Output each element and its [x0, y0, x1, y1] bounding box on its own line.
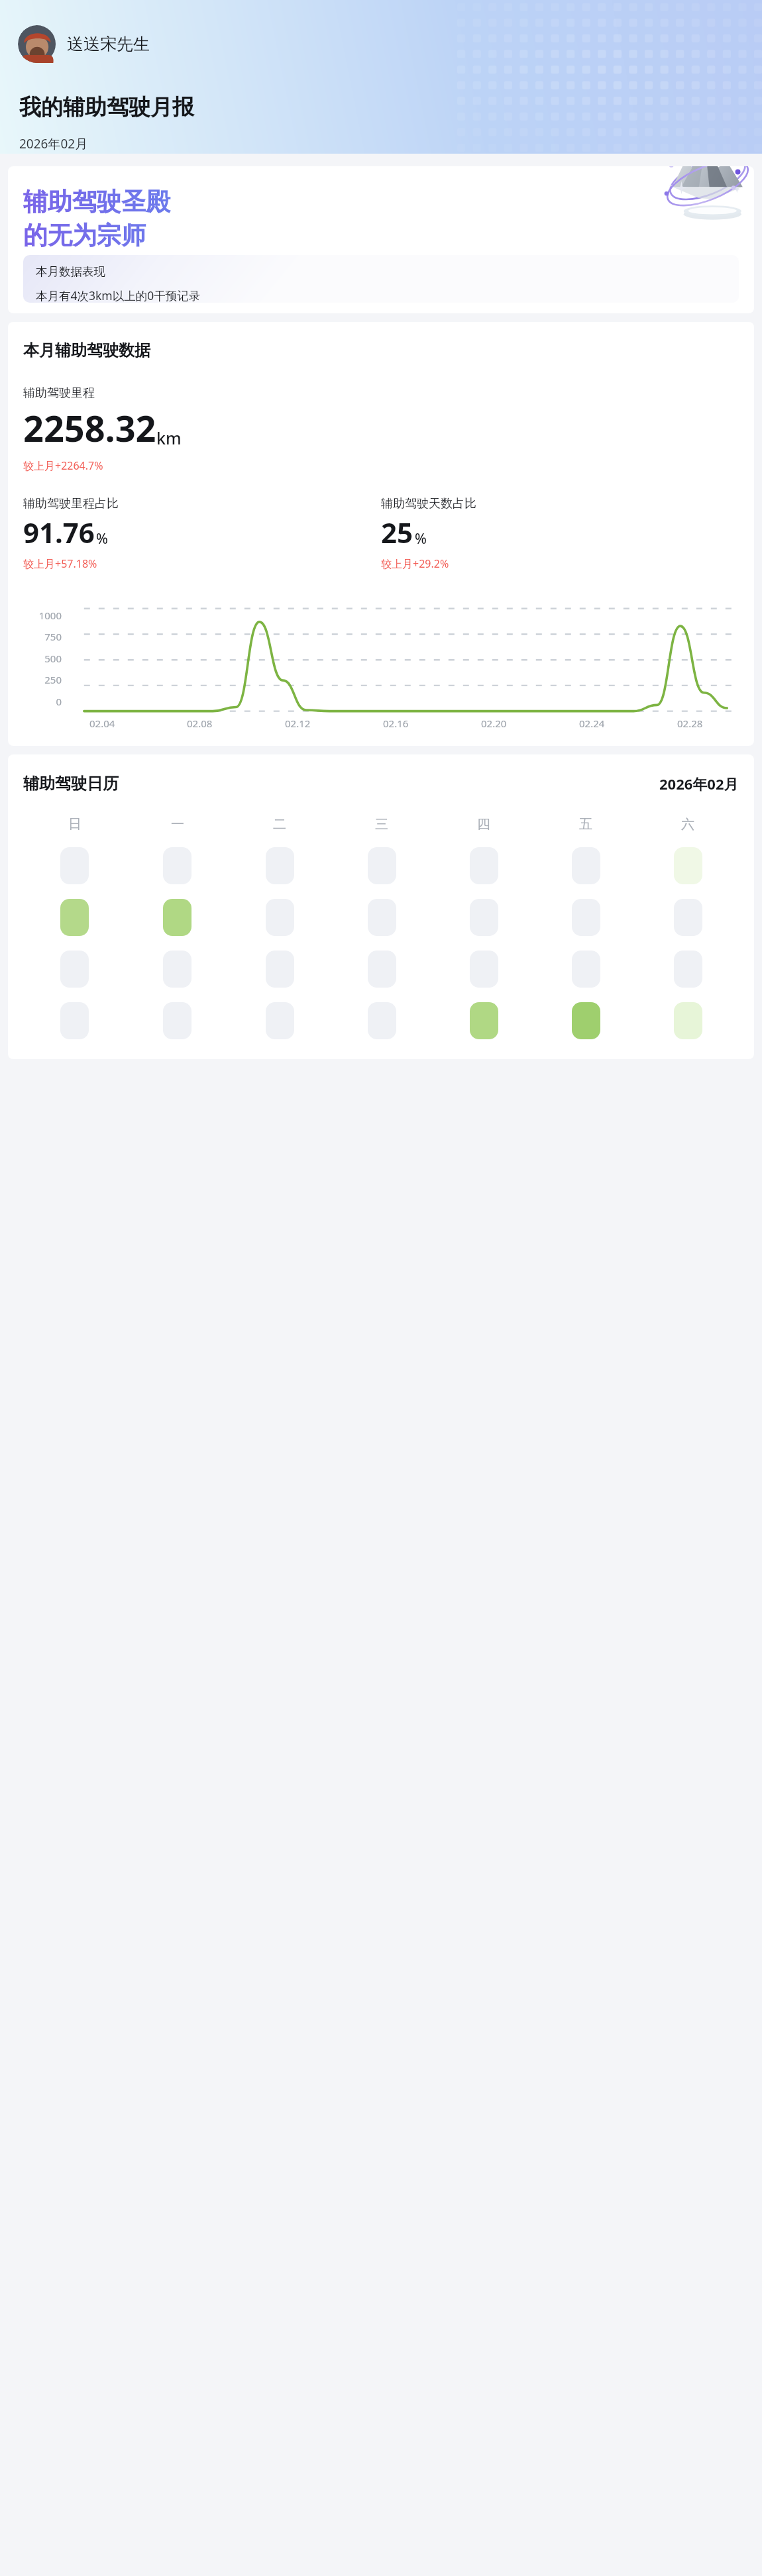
staticText: 02.16 — [383, 717, 409, 730]
staticText: 本月有4次3km以上的0干预记录 — [36, 287, 201, 303]
staticText: 辅助驾驶天数占比 — [381, 496, 476, 511]
staticText: 辅助驾驶里程占比 — [23, 496, 119, 511]
button[interactable]: Day 5 — [470, 847, 498, 884]
button[interactable]: Day 25 — [368, 1002, 396, 1039]
staticText: 四 — [477, 816, 490, 833]
button[interactable]: Day 17 — [266, 951, 294, 988]
button[interactable]: Day 21 — [674, 951, 702, 988]
button[interactable]: Day 22 — [60, 1002, 89, 1039]
button[interactable]: Day 10 — [266, 899, 294, 936]
button[interactable]: Day 16 — [163, 951, 191, 988]
staticText: 0 — [23, 695, 62, 708]
button[interactable]: Day 19 — [470, 951, 498, 988]
staticText: % — [415, 529, 427, 548]
button[interactable]: Achievement trophy illustration — [8, 166, 754, 313]
staticText: km — [156, 427, 182, 449]
button[interactable]: Day 23 — [163, 1002, 191, 1039]
staticText: 2258.32 — [23, 403, 156, 452]
staticText: 较上月+29.2% — [381, 556, 449, 571]
staticText: 02.04 — [89, 717, 115, 730]
button[interactable]: 本月辅助驾驶数据 — [8, 322, 754, 746]
staticText: 一 — [171, 816, 184, 833]
other: Achievement trophy illustration — [664, 166, 751, 223]
staticText: 五 — [579, 816, 592, 833]
staticText: 较上月+2264.7% — [23, 458, 103, 473]
button[interactable]: 辅助驾驶天数占比 — [381, 496, 739, 571]
other: Profile avatar — [18, 25, 56, 63]
button[interactable]: 辅助驾驶里程占比 — [23, 496, 381, 571]
button[interactable]: Day 6 — [572, 847, 600, 884]
staticText: % — [96, 529, 108, 548]
staticText: 91.76 — [23, 513, 95, 551]
staticText: 的无为宗师 — [23, 220, 146, 251]
staticText: 02.20 — [481, 717, 507, 730]
staticText: 我的辅助驾驶月报 — [19, 93, 194, 121]
button[interactable]: Day 9 — [163, 899, 191, 936]
staticText: 辅助驾驶日历 — [23, 774, 119, 794]
button[interactable]: Day 27 — [572, 1002, 600, 1039]
staticText: 500 — [23, 652, 62, 665]
staticText: 02.24 — [579, 717, 605, 730]
button[interactable]: Day 24 — [266, 1002, 294, 1039]
button[interactable]: Profile avatar — [18, 25, 159, 63]
staticText: 02.12 — [285, 717, 311, 730]
button[interactable]: 本月数据表现 — [23, 255, 739, 303]
button[interactable]: Day 13 — [572, 899, 600, 936]
staticText: 1000 — [23, 609, 62, 622]
button[interactable]: Day 14 — [674, 899, 702, 936]
staticText: 250 — [23, 673, 62, 686]
button[interactable]: Day 18 — [368, 951, 396, 988]
staticText: 三 — [375, 816, 388, 833]
staticText: 二 — [273, 816, 286, 833]
button[interactable]: Day 4 — [368, 847, 396, 884]
staticText: 日 — [68, 816, 82, 833]
button[interactable]: Day 28 — [674, 1002, 702, 1039]
staticText: 02.28 — [677, 717, 703, 730]
button[interactable]: Day 8 — [60, 899, 89, 936]
staticText: 辅助驾驶里程 — [23, 386, 95, 401]
button[interactable]: Day 1 — [60, 847, 89, 884]
button[interactable]: Day 26 — [470, 1002, 498, 1039]
staticText: 02.08 — [187, 717, 213, 730]
staticText: 2026年02月 — [19, 135, 88, 152]
staticText: 本月数据表现 — [36, 264, 105, 279]
staticText: 2026年02月 — [659, 774, 739, 794]
button[interactable]: Day 20 — [572, 951, 600, 988]
staticText: 25 — [381, 513, 413, 551]
staticText: 辅助驾驶圣殿 — [23, 186, 170, 217]
staticText: 六 — [681, 816, 694, 833]
button[interactable]: Day 2 — [163, 847, 191, 884]
staticText: 较上月+57.18% — [23, 556, 97, 571]
staticText: 人车合一境界达成,解锁「AI读心术十级」隐藏成就 — [23, 257, 282, 273]
staticText: 本月辅助驾驶数据 — [23, 340, 150, 360]
staticText: 送送宋先生 — [67, 34, 150, 54]
button[interactable]: Day 15 — [60, 951, 89, 988]
button[interactable]: Day 3 — [266, 847, 294, 884]
staticText: 750 — [23, 630, 62, 643]
button[interactable]: Day 11 — [368, 899, 396, 936]
button[interactable]: Day 12 — [470, 899, 498, 936]
button[interactable]: 辅助驾驶日历 — [8, 754, 754, 1059]
button[interactable]: Day 7 — [674, 847, 702, 884]
